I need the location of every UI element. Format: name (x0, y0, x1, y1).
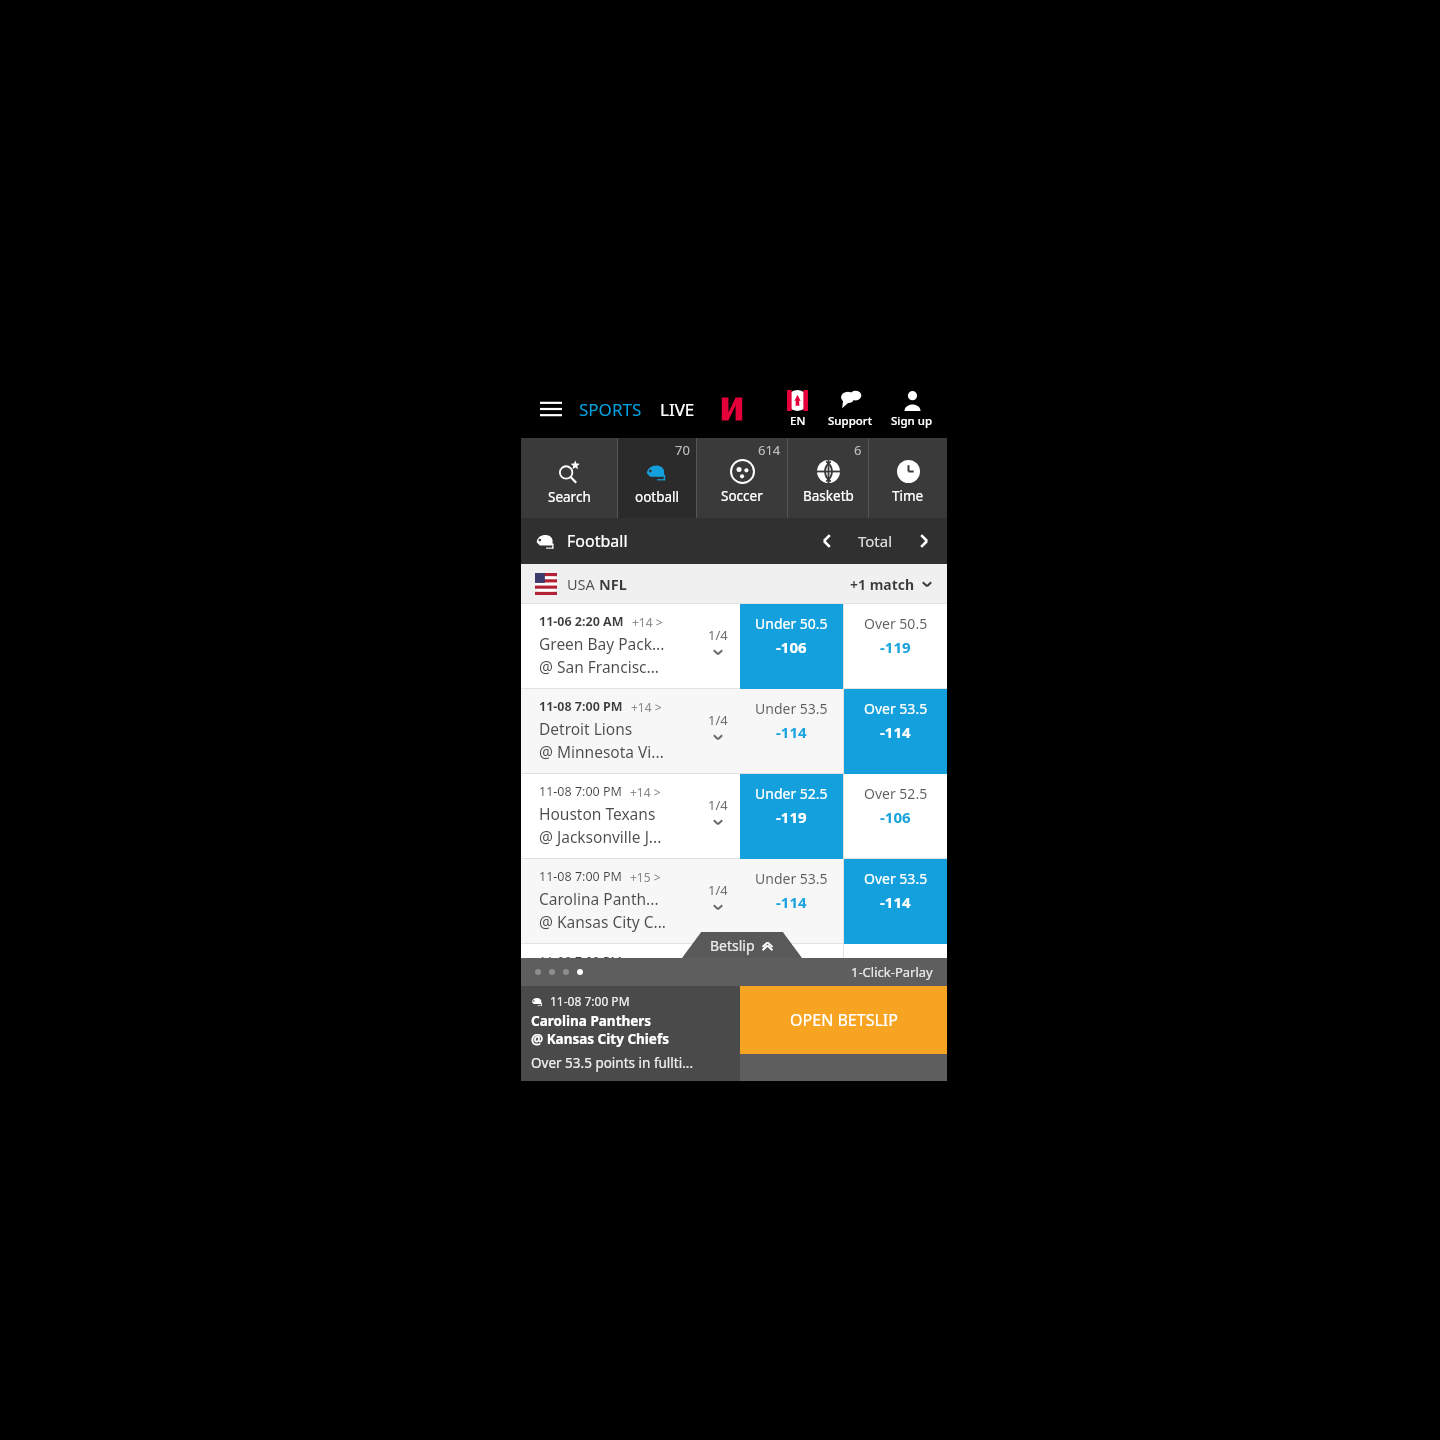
staticText: 1/4 (708, 881, 728, 899)
staticText: -106 (776, 637, 807, 657)
staticText: 70 (675, 441, 690, 459)
staticText: NFL (599, 574, 627, 594)
staticText: LIVE (660, 398, 695, 421)
staticText: +14 > (632, 614, 663, 630)
staticText: 6 (854, 441, 862, 459)
button[interactable]: Betslip (682, 932, 802, 958)
button[interactable]: 614 (697, 438, 787, 518)
staticText: +1 match (850, 575, 915, 594)
staticText: -114 (880, 722, 911, 742)
staticText: ootball (635, 488, 680, 506)
staticText: Under 53.5 (755, 954, 828, 973)
button[interactable]: 11-08 7:00 PM (521, 774, 740, 859)
button[interactable]: Under 53.5 (740, 944, 843, 1029)
staticText: 11-08 7:00 PM (550, 993, 630, 1009)
staticText: @ Kansas City C... (539, 911, 666, 932)
button[interactable]: Under 53.5 (740, 689, 843, 774)
button[interactable]: Time (869, 438, 947, 518)
staticText: 11-08 7:00 PM (539, 868, 622, 885)
staticText: +14 > (630, 954, 661, 970)
staticText: Carolina Panth... (539, 888, 659, 909)
staticText: -114 (776, 722, 807, 742)
staticText: -114 (880, 892, 911, 912)
staticText: USA (567, 574, 599, 594)
button[interactable]: Over 52.5 (844, 774, 947, 859)
staticText: Support (828, 413, 873, 429)
staticText: Under 53.5 (755, 869, 828, 888)
button[interactable]: Total (858, 531, 893, 551)
button[interactable]: 11-06 2:20 AM (521, 604, 740, 689)
staticText: Detroit Lions (539, 718, 633, 739)
staticText: @ Minnesota Vi... (539, 741, 664, 762)
button[interactable]: 11-08 7:00 PM (521, 689, 740, 774)
button[interactable]: Search (521, 438, 617, 518)
staticText: 11-06 2:20 AM (539, 613, 624, 630)
staticText: Betslip (710, 936, 755, 955)
button[interactable]: LIVE (660, 398, 695, 421)
staticText: Football (567, 530, 628, 552)
button[interactable]: 6 (788, 438, 868, 518)
staticText: -106 (880, 807, 911, 827)
staticText: @ Kansas City Chiefs (531, 1030, 669, 1048)
button[interactable]: Over 50.5 (844, 604, 947, 689)
staticText: 1/4 (708, 711, 728, 729)
button[interactable]: Over 53.5 (844, 859, 947, 944)
staticText: OPEN BETSLIP (790, 1009, 898, 1031)
button[interactable]: Under 52.5 (740, 774, 843, 859)
button[interactable]: OPEN BETSLIP (740, 986, 947, 1054)
staticText: -119 (776, 807, 807, 827)
button[interactable]: Next (907, 524, 941, 558)
staticText: Houston Texans (539, 803, 656, 824)
button[interactable]: Over 53.5 (844, 944, 947, 1029)
button[interactable]: Menu (535, 393, 567, 425)
staticText: Soccer (721, 487, 763, 505)
button[interactable]: USA (521, 564, 947, 604)
staticText: -114 (776, 892, 807, 912)
staticText: Carolina Panthers (531, 1012, 652, 1030)
button[interactable]: 70 (618, 438, 696, 518)
staticText: Basketb (803, 487, 854, 505)
button[interactable]: Under 53.5 (740, 859, 843, 944)
staticText: @ Jacksonville J... (539, 826, 662, 847)
staticText: 11-08 7:00 PM (539, 953, 622, 970)
staticText: +14 > (630, 784, 661, 800)
button[interactable]: Previous (810, 524, 844, 558)
staticText: 614 (758, 441, 781, 459)
staticText: Under 52.5 (755, 784, 828, 803)
button[interactable]: Support (826, 389, 875, 429)
staticText: +15 > (630, 869, 661, 885)
staticText: Search (548, 488, 591, 506)
staticText: SPORTS (579, 398, 642, 421)
staticText: Under 50.5 (755, 614, 828, 633)
staticText: -119 (880, 637, 911, 657)
staticText: Over 52.5 (864, 784, 928, 803)
button[interactable]: 11-08 7:00 PM (531, 993, 740, 1081)
button[interactable]: 11-08 7:00 PM (521, 944, 740, 1029)
staticText: Over 53.5 points in fullti... (531, 1054, 694, 1072)
staticText: Over 50.5 (864, 614, 928, 633)
button[interactable]: EN (785, 390, 810, 429)
staticText: Over 53.5 (864, 954, 928, 973)
staticText: 11-08 7:00 PM (539, 698, 623, 715)
staticText: 1/4 (708, 796, 728, 814)
button[interactable]: Under 50.5 (740, 604, 843, 689)
staticText: Under 53.5 (755, 699, 828, 718)
staticText: Time (892, 487, 924, 505)
button[interactable]: Home (715, 392, 749, 426)
staticText: Sign up (891, 413, 933, 429)
staticText: Total (858, 531, 893, 551)
staticText: Green Bay Pack... (539, 633, 665, 654)
button[interactable]: 11-08 7:00 PM (521, 859, 740, 944)
button[interactable]: Over 53.5 (844, 689, 947, 774)
staticText: Over 53.5 (864, 869, 928, 888)
staticText: Over 53.5 (864, 699, 928, 718)
button[interactable]: SPORTS (579, 398, 642, 421)
button[interactable]: Sign up (889, 390, 935, 429)
staticText: 1/4 (708, 626, 728, 644)
staticText: +14 > (631, 699, 662, 715)
staticText: EN (790, 413, 806, 429)
staticText: 11-08 7:00 PM (539, 783, 622, 800)
staticText: 1-Click-Parlay (851, 963, 933, 981)
staticText: @ San Francisc... (539, 656, 659, 677)
